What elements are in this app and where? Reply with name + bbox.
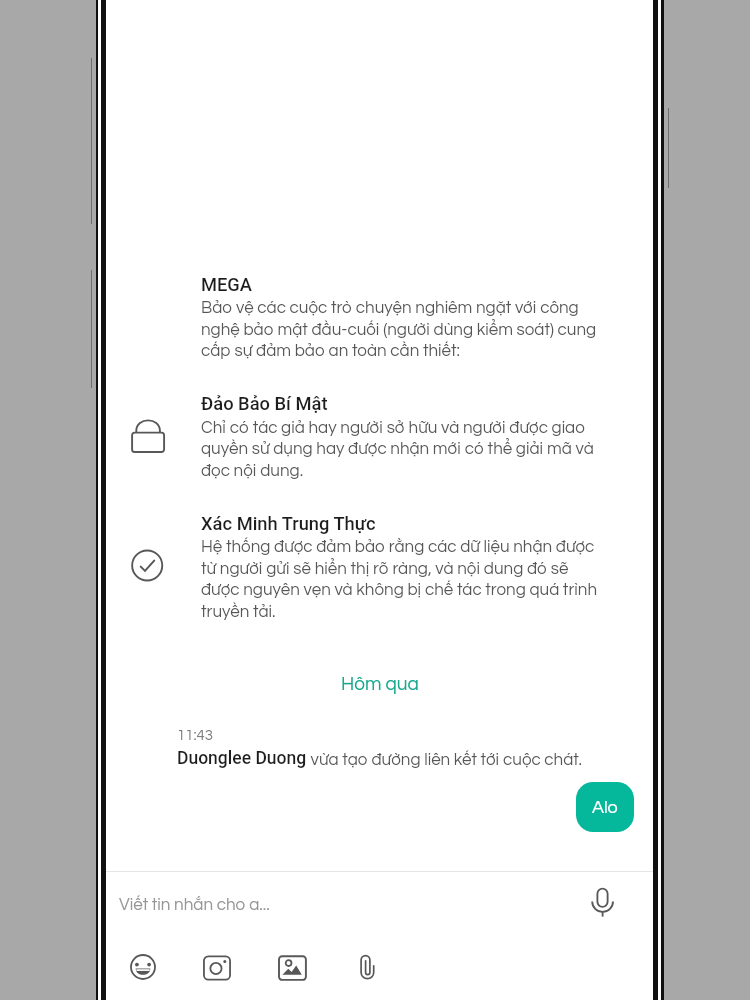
staticText: từ người gửi sẽ hiển thị rõ ràng, và nội…	[201, 560, 569, 578]
staticText: cấp sự đảm bảo an toàn cần thiết:	[201, 342, 460, 360]
button[interactable]: Record voice message	[586, 880, 620, 924]
staticText: Alo	[592, 798, 618, 817]
button[interactable]: Alo	[576, 782, 634, 832]
button[interactable]: Hôm qua	[106, 674, 653, 704]
staticText: quyền sử dụng hay được nhận mới có thể g…	[201, 440, 594, 458]
staticText: nghệ bảo mật đầu-cuối (người dùng kiểm s…	[201, 321, 597, 339]
staticText: MEGA	[201, 274, 253, 295]
button[interactable]: Camera	[196, 947, 238, 989]
staticText: Bảo vệ các cuộc trò chuyện nghiêm ngặt v…	[201, 299, 579, 317]
staticText: được nguyên vẹn và không bị chế tác tron…	[201, 581, 597, 599]
button[interactable]: Gallery	[271, 947, 313, 989]
staticText: Viết tin nhắn cho a...	[119, 896, 270, 914]
staticText: Đảo Bảo Bí Mật	[201, 393, 328, 414]
staticText: Xác Minh Trung Thực	[201, 513, 376, 534]
button[interactable]: Emoji	[122, 946, 164, 988]
staticText: Hôm qua	[341, 674, 419, 694]
staticText: vừa tạo đường liên kết tới cuộc chát.	[307, 751, 583, 769]
button[interactable]: Viết tin nhắn cho a...	[106, 882, 566, 928]
staticText: Hệ thống được đảm bảo rằng các dữ liệu n…	[201, 538, 595, 556]
staticText: Duonglee Duong	[177, 748, 307, 769]
staticText: 11:43	[177, 728, 214, 743]
button[interactable]: Attach file	[347, 946, 389, 988]
staticText: đọc nội dung.	[201, 462, 304, 480]
staticText: Chỉ có tác giả hay người sở hữu và người…	[201, 419, 585, 437]
staticText: truyền tải.	[201, 603, 276, 621]
